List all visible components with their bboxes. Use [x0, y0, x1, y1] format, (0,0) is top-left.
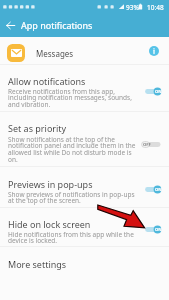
- staticText: ON: [155, 227, 162, 233]
- staticText: App notifications: [21, 19, 93, 31]
- staticText: Set as priority: [8, 122, 67, 134]
- staticText: Allow notifications: [8, 75, 86, 87]
- staticText: 10:48: [147, 3, 164, 12]
- staticText: 93%: [126, 3, 139, 12]
- staticText: Messages: [36, 48, 74, 59]
- staticText: Receive notifications from this app, inc…: [8, 87, 132, 109]
- button[interactable]: Back: [4, 19, 17, 32]
- staticText: More settings: [8, 258, 67, 270]
- button[interactable]: [0, 208, 169, 246]
- button[interactable]: [0, 112, 169, 166]
- button[interactable]: App info: [147, 44, 161, 58]
- button[interactable]: [0, 65, 169, 111]
- staticText: Hide notifications from this app while t…: [8, 230, 134, 245]
- staticText: Show notifications at the top of the not…: [8, 135, 136, 164]
- staticText: ON: [155, 187, 162, 193]
- button[interactable]: More settings: [0, 247, 169, 273]
- staticText: Previews in pop-ups: [8, 178, 93, 190]
- button[interactable]: Switch on: [144, 223, 164, 236]
- button[interactable]: Switch on: [144, 85, 164, 98]
- staticText: OFF: [143, 142, 151, 148]
- staticText: Show previews of notifications in pop-up…: [8, 190, 135, 205]
- button[interactable]: Switch on: [144, 183, 164, 196]
- button[interactable]: Switch off: [144, 138, 164, 151]
- button[interactable]: [0, 167, 169, 207]
- staticText: ON: [155, 89, 162, 95]
- button[interactable]: Messages: [0, 37, 169, 64]
- staticText: Hide on lock screen: [8, 218, 91, 230]
